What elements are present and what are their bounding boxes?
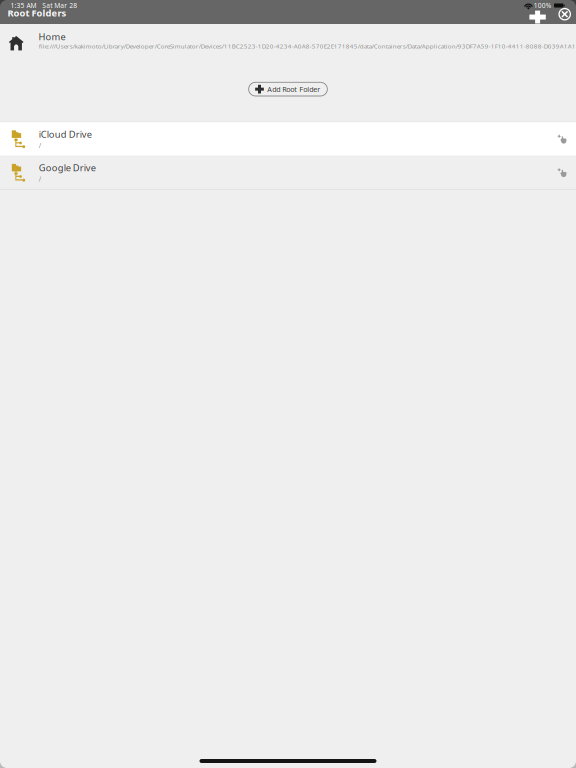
staticText: iCloud Drive: [39, 128, 92, 140]
staticText: 1:35 AM: [10, 1, 36, 10]
staticText: /: [39, 174, 41, 183]
button[interactable]: Close: [556, 6, 573, 22]
button[interactable]: Google Drive: [0, 156, 576, 189]
staticText: Home: [39, 30, 66, 43]
staticText: 100%: [534, 1, 552, 10]
staticText: Sat Mar 28: [42, 1, 77, 10]
staticText: Root Folders: [7, 7, 66, 19]
button[interactable]: Add Root Folder: [249, 82, 327, 96]
staticText: Add Root Folder: [267, 84, 320, 94]
button[interactable]: Add Folder: [527, 9, 548, 25]
staticText: file:///Users/kakimoto/Library/Developer…: [39, 42, 576, 50]
staticText: /: [39, 141, 41, 150]
staticText: Google Drive: [39, 161, 96, 174]
button[interactable]: iCloud Drive: [0, 122, 576, 156]
